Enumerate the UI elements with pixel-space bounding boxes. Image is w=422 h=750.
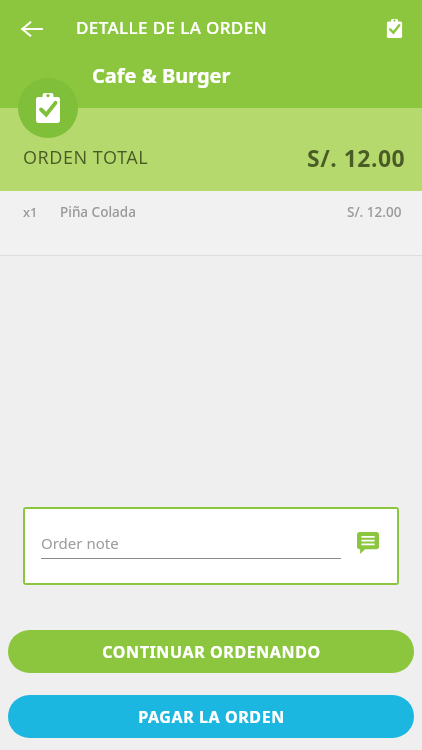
button[interactable]: Order summary xyxy=(372,6,416,50)
button[interactable]: PAGAR LA ORDEN xyxy=(8,695,414,738)
staticText: CONTINUAR ORDENANDO xyxy=(102,641,321,663)
button[interactable]: Back xyxy=(10,7,54,51)
button[interactable]: CONTINUAR ORDENANDO xyxy=(8,630,414,673)
button[interactable]: Add note xyxy=(355,530,381,556)
staticText: ORDEN TOTAL xyxy=(23,145,149,170)
staticText: x1 xyxy=(23,203,38,221)
staticText: Piña Colada xyxy=(60,203,136,221)
staticText: S/. 12.00 xyxy=(347,203,402,221)
button[interactable]: Order confirmed xyxy=(18,78,78,138)
staticText: Cafe & Burger xyxy=(92,62,231,89)
staticText: S/. 12.00 xyxy=(307,142,406,173)
staticText: Order note xyxy=(41,533,119,553)
staticText: PAGAR LA ORDEN xyxy=(138,706,285,728)
staticText: DETALLE DE LA ORDEN xyxy=(76,16,268,39)
button[interactable]: x1 xyxy=(0,191,422,255)
button[interactable]: Order note xyxy=(25,509,397,583)
